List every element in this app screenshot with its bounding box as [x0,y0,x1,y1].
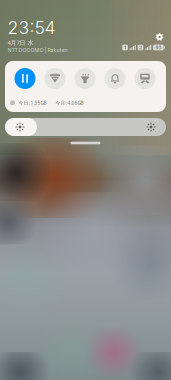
staticText: 4月7日 水 [7,38,33,46]
button[interactable]: Mobile data [14,68,35,89]
button[interactable]: Brightness [5,118,166,136]
button[interactable]: Flashlight [74,68,95,89]
button[interactable]: Wi-Fi [44,68,65,89]
staticText: 今月: 4.06GB [55,99,83,106]
button[interactable]: Silent mode [104,68,125,89]
staticText: 2 [139,44,142,51]
staticText: 93 [155,44,161,51]
staticText: NTT DOCOMO | Rakuten [7,47,67,53]
button[interactable]: Screenshot [134,68,155,89]
staticText: 今日: 1.55GB [18,99,46,106]
staticText: 1 [123,44,126,51]
staticText: 23:54 [7,17,55,38]
button[interactable]: Settings [152,30,166,44]
